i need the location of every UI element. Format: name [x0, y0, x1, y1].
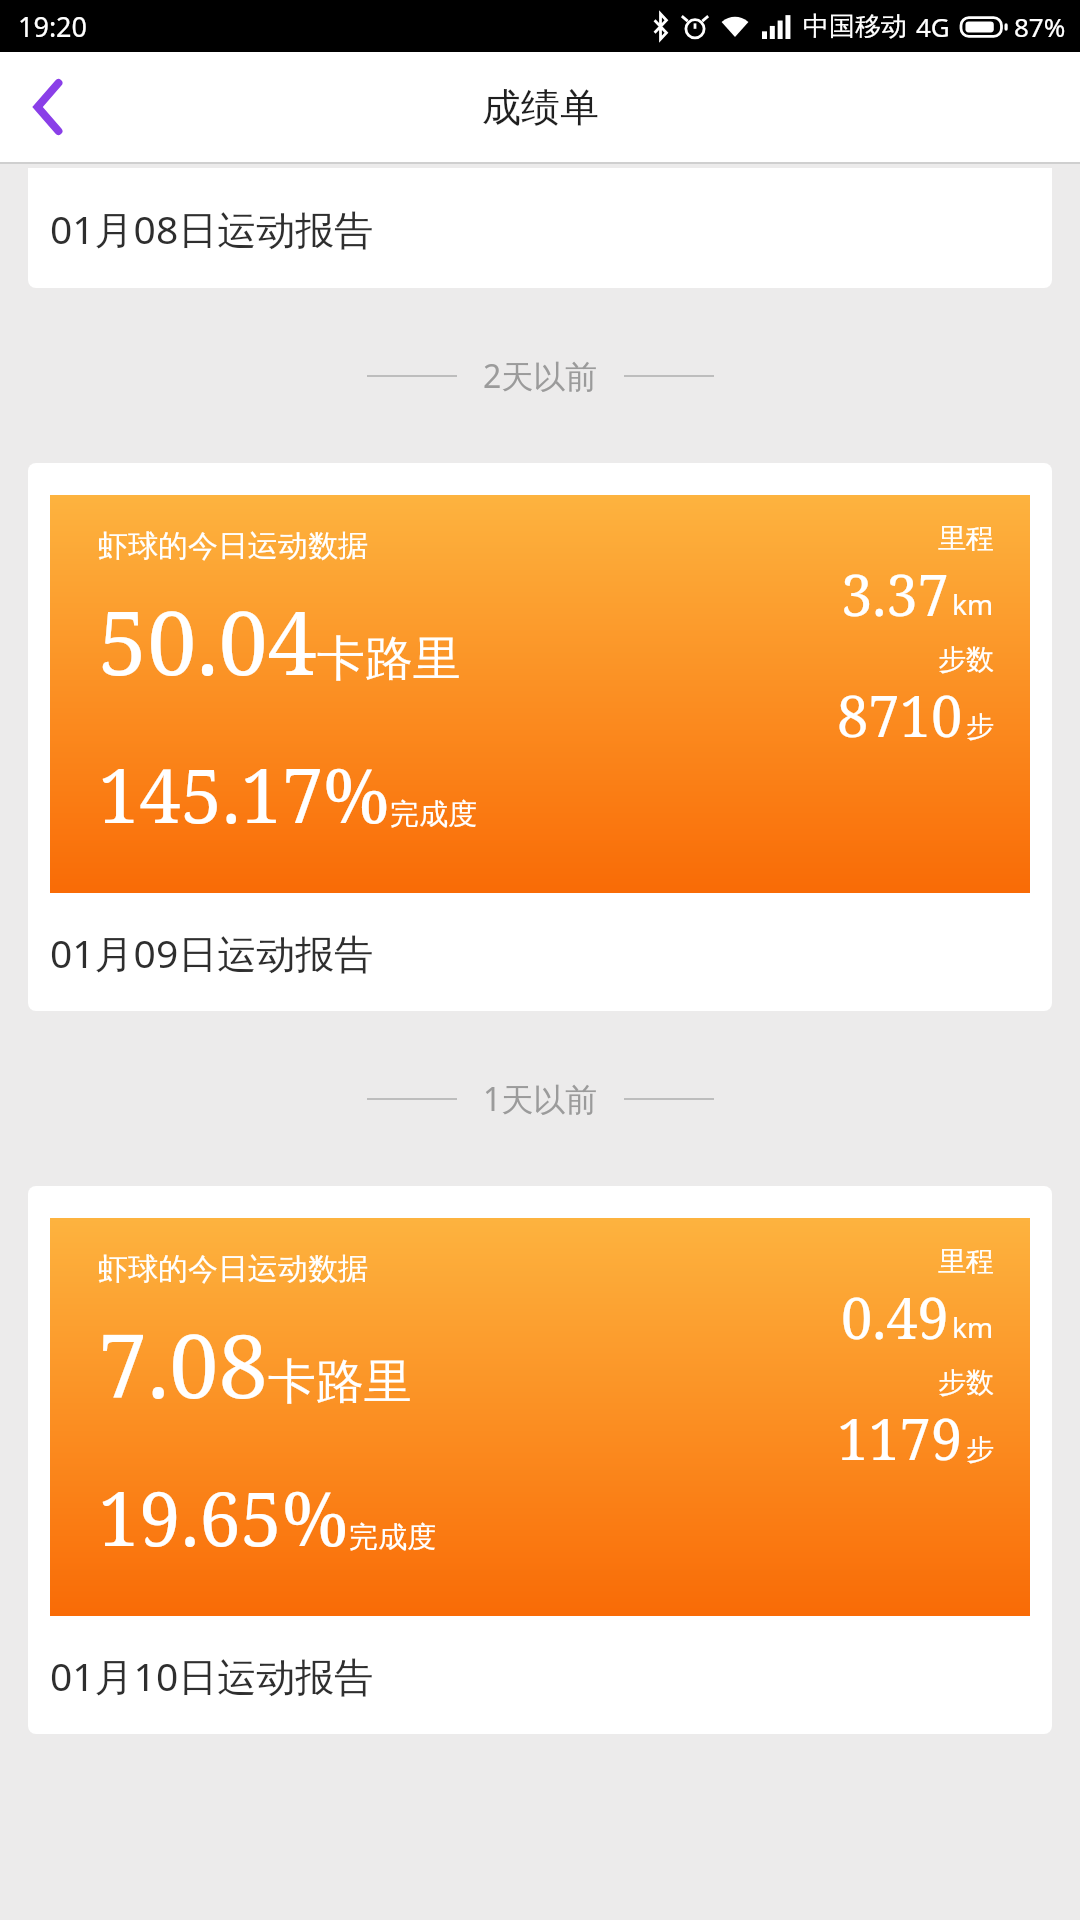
- staticText: 卡路里: [317, 629, 461, 689]
- staticText: 19.65%: [98, 1467, 349, 1568]
- staticText: 19:20: [18, 8, 88, 45]
- staticText: 成绩单: [482, 83, 599, 132]
- staticText: 1天以前: [483, 1077, 598, 1121]
- staticText: 步: [966, 709, 994, 744]
- staticText: 145.17%: [98, 744, 390, 845]
- button[interactable]: 01月08日运动报告: [28, 168, 1052, 288]
- button[interactable]: 虾球的今日运动数据: [28, 463, 1052, 1011]
- staticText: km: [952, 1308, 994, 1346]
- staticText: 2天以前: [483, 354, 598, 398]
- staticText: km: [952, 585, 994, 623]
- staticText: 中国移动: [803, 10, 907, 43]
- staticText: 4G: [916, 9, 950, 44]
- staticText: 50.04: [98, 581, 317, 701]
- staticText: 1179: [837, 1400, 963, 1476]
- staticText: 01月10日运动报告: [50, 1649, 374, 1702]
- button[interactable]: 虾球的今日运动数据: [28, 1186, 1052, 1734]
- staticText: 0.49: [841, 1279, 949, 1355]
- staticText: 步数: [938, 642, 994, 677]
- staticText: 87%: [1014, 9, 1066, 44]
- staticText: 步数: [938, 1365, 994, 1400]
- staticText: 步: [966, 1432, 994, 1467]
- button[interactable]: Back: [8, 67, 88, 147]
- staticText: 01月08日运动报告: [50, 202, 374, 255]
- staticText: 卡路里: [268, 1352, 412, 1412]
- staticText: 虾球的今日运动数据: [98, 527, 368, 565]
- staticText: 完成度: [349, 1519, 436, 1556]
- staticText: 8710: [837, 677, 963, 753]
- staticText: 7.08: [98, 1304, 268, 1424]
- staticText: 完成度: [390, 796, 477, 833]
- staticText: 虾球的今日运动数据: [98, 1250, 368, 1288]
- staticText: 里程: [938, 521, 994, 556]
- staticText: 3.37: [841, 556, 949, 632]
- staticText: 01月09日运动报告: [50, 926, 374, 979]
- staticText: 里程: [938, 1244, 994, 1279]
